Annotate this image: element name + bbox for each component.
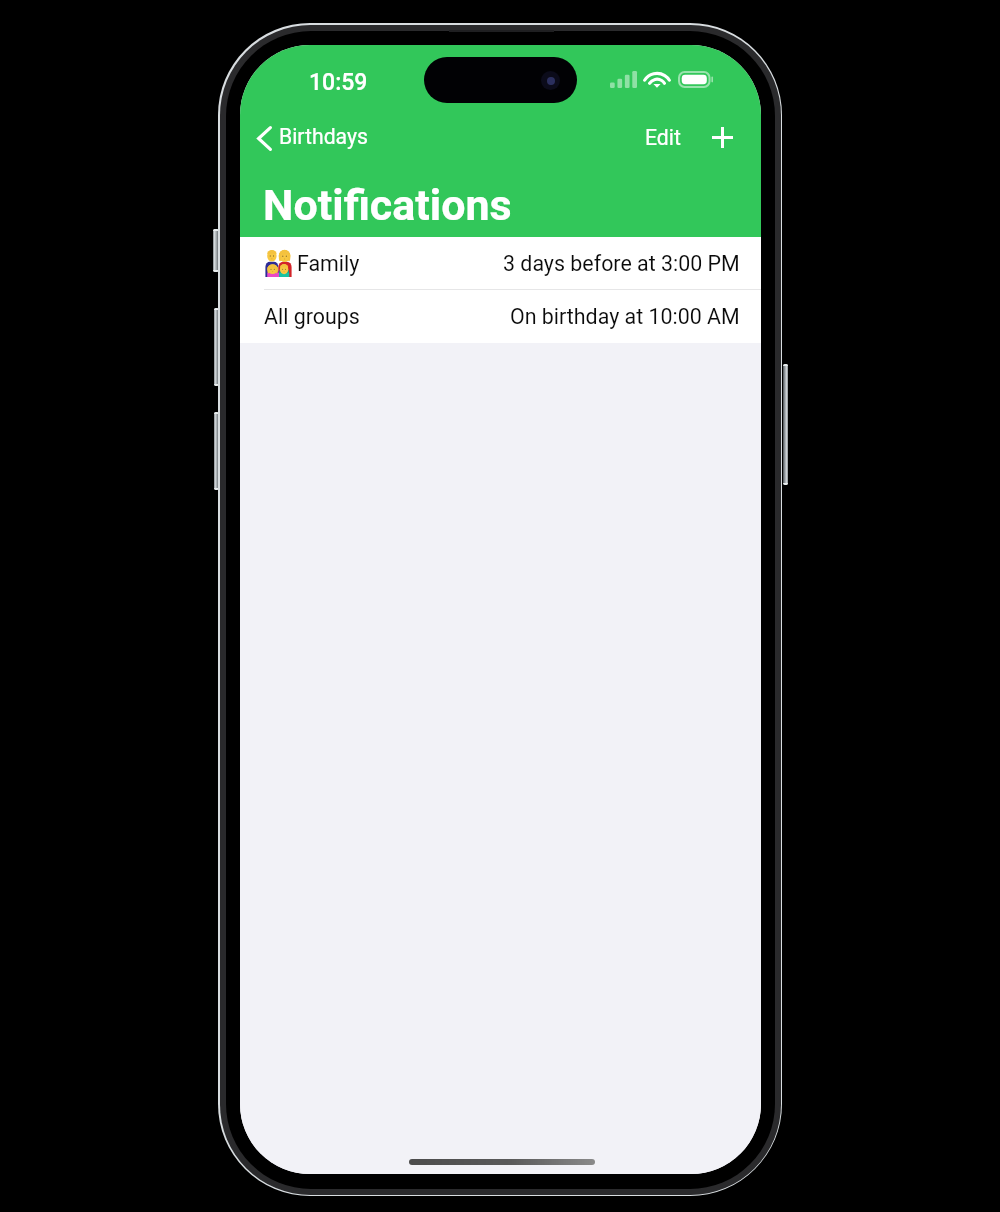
button[interactable]: Birthdays	[251, 116, 374, 160]
staticText: Notifications	[263, 180, 512, 230]
button[interactable]: All groups	[240, 290, 761, 343]
button[interactable]: Edit	[635, 115, 691, 159]
staticText: Edit	[645, 125, 681, 150]
staticText: Birthdays	[279, 124, 368, 149]
staticText: 10:59	[309, 69, 368, 96]
staticText: On birthday at 10:00 AM	[510, 304, 740, 329]
staticText: All groups	[264, 304, 360, 329]
staticText: 3 days before at 3:00 PM	[503, 251, 740, 276]
staticText: Family	[297, 251, 360, 276]
button[interactable]: Add birthday	[698, 113, 746, 161]
button[interactable]: Family	[240, 237, 761, 290]
